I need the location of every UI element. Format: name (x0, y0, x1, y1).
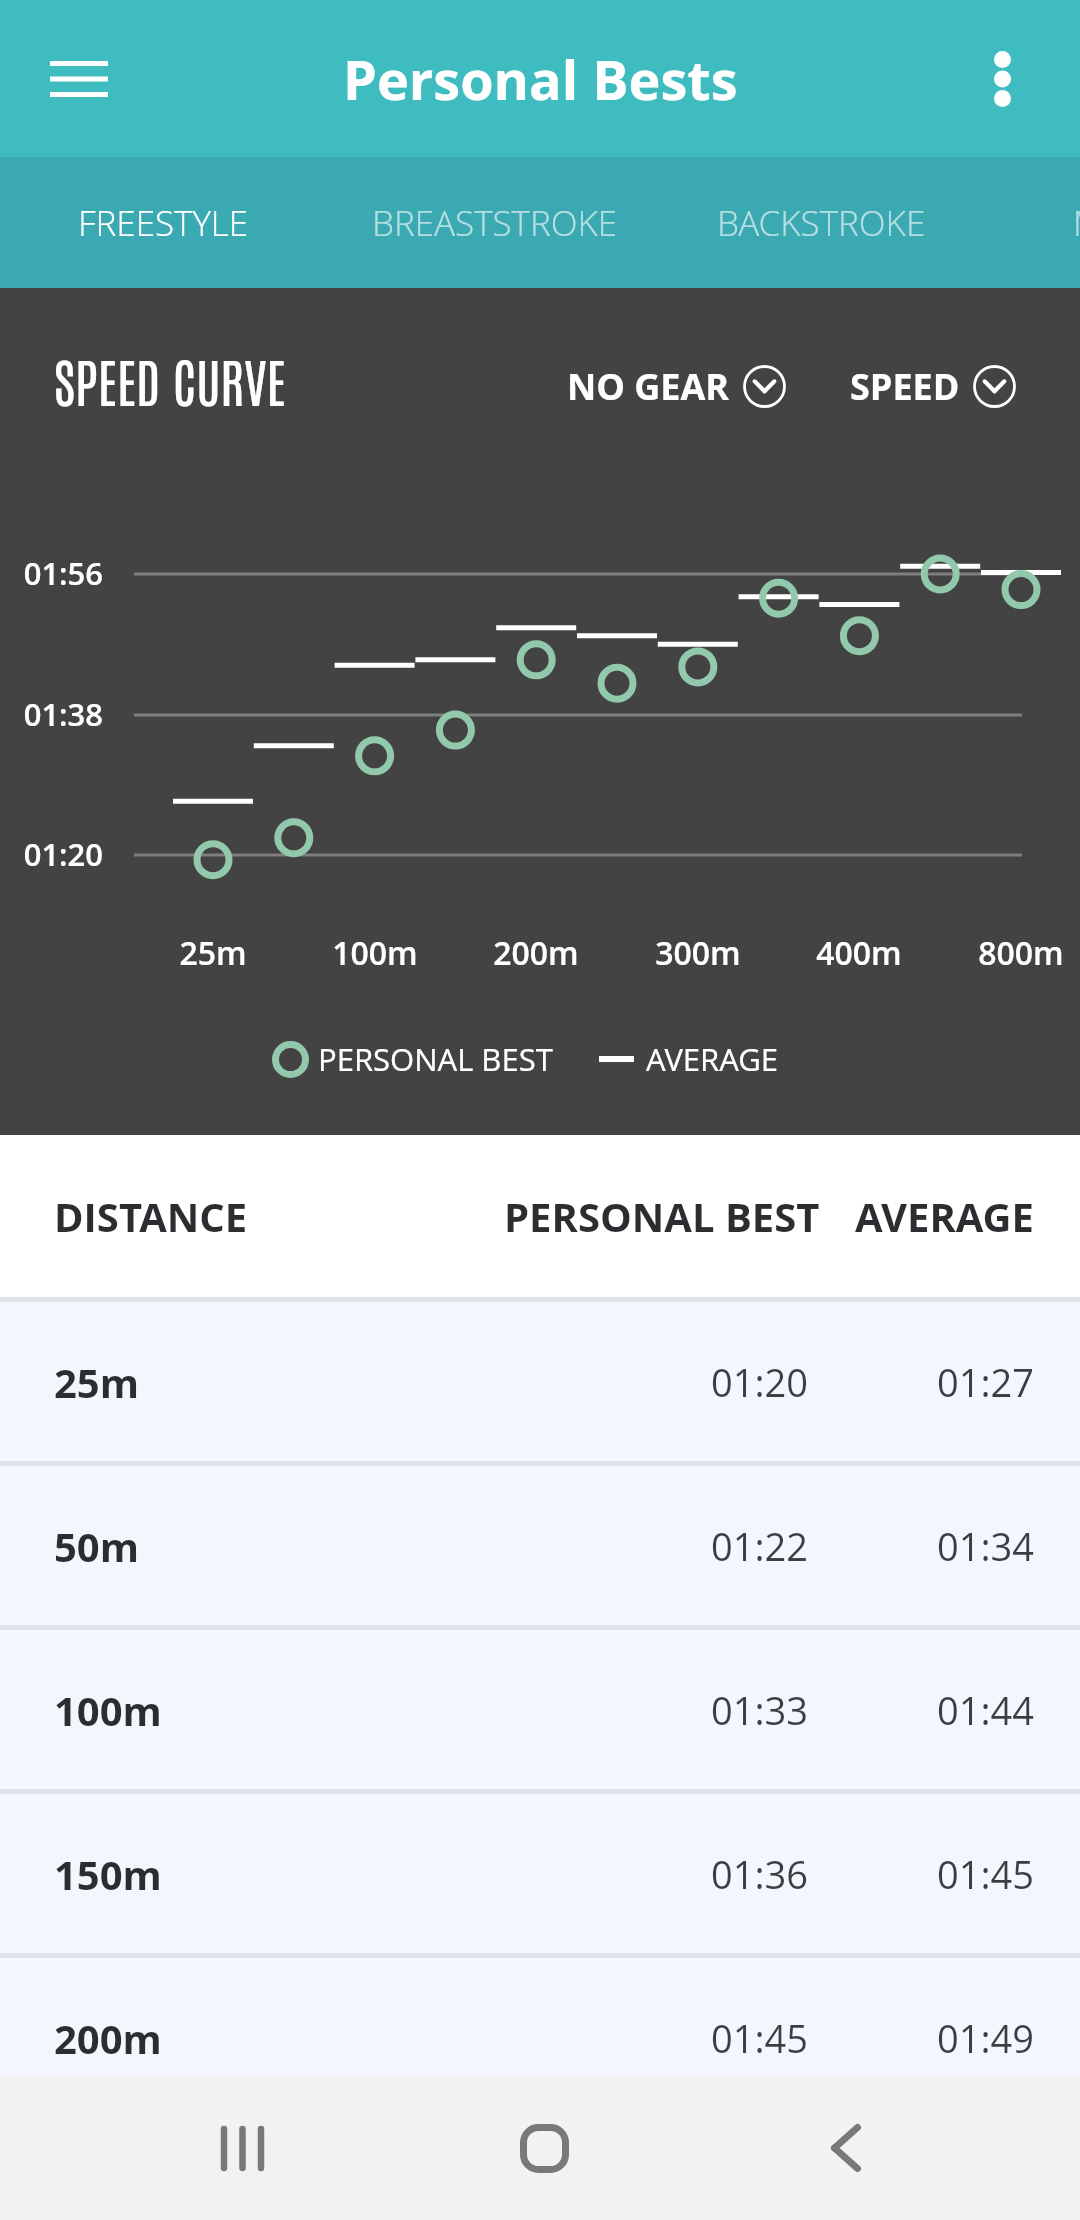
button[interactable]: Back (776, 2076, 916, 2220)
staticText: BREASTSTROKE (372, 199, 618, 247)
button[interactable]: 200m (0, 1958, 1080, 2117)
button[interactable]: Recent apps (172, 2076, 312, 2220)
staticText: 25m (123, 931, 303, 975)
staticText: 01:33 (608, 1684, 808, 1736)
button[interactable]: 100m (0, 1630, 1080, 1789)
button[interactable]: BACKSTROKE (717, 157, 926, 288)
staticText: 400m (769, 931, 949, 975)
button[interactable]: NO GEAR (567, 362, 786, 411)
staticText: 100m (285, 931, 465, 975)
staticText: 01:49 (834, 2012, 1034, 2064)
button[interactable]: FREESTYLE (78, 157, 249, 288)
staticText: 01:45 (608, 2012, 808, 2064)
staticText: 01:38 (0, 693, 103, 735)
staticText: FREESTYLE (78, 199, 249, 247)
staticText: 01:34 (834, 1520, 1034, 1572)
staticText: PERSONAL BEST (504, 1189, 820, 1243)
staticText: NO GEAR (567, 362, 730, 411)
button[interactable]: SPEED (850, 362, 1016, 411)
staticText: MEDLEY (1073, 199, 1080, 247)
button[interactable]: 50m (0, 1466, 1080, 1625)
staticText: 01:20 (0, 833, 103, 875)
staticText: 01:45 (834, 1848, 1034, 1900)
staticText: DISTANCE (54, 1189, 248, 1243)
button[interactable]: PERSONAL BEST (265, 1032, 500, 1086)
staticText: 01:22 (608, 1520, 808, 1572)
staticText: 200m (446, 931, 626, 975)
staticText: SPEED (850, 362, 960, 411)
staticText: 01:56 (0, 552, 103, 594)
staticText: PERSONAL BEST (318, 1038, 553, 1080)
staticText: BACKSTROKE (717, 199, 926, 247)
staticText: 01:20 (608, 1356, 808, 1408)
staticText: AVERAGE (646, 1038, 779, 1080)
button[interactable]: More options (945, 22, 1059, 136)
button[interactable]: BREASTSTROKE (372, 157, 618, 288)
staticText: 01:36 (608, 1848, 808, 1900)
button[interactable]: Home (474, 2076, 614, 2220)
staticText: 200m (54, 2011, 162, 2065)
staticText: 01:44 (834, 1684, 1034, 1736)
staticText: 800m (931, 931, 1080, 975)
staticText: 100m (54, 1683, 162, 1737)
button[interactable]: 25m (0, 1302, 1080, 1461)
staticText: 150m (54, 1847, 162, 1901)
staticText: 25m (54, 1355, 139, 1409)
button[interactable]: Open navigation menu (22, 22, 136, 136)
button[interactable]: 150m (0, 1794, 1080, 1953)
staticText: 01:27 (834, 1356, 1034, 1408)
staticText: 300m (608, 931, 788, 975)
button[interactable]: MEDLEY (1073, 157, 1080, 288)
staticText: 50m (54, 1519, 139, 1573)
staticText: Personal Bests (343, 42, 738, 116)
staticText: AVERAGE (855, 1189, 1034, 1243)
staticText: SPEED CURVE (54, 346, 286, 413)
